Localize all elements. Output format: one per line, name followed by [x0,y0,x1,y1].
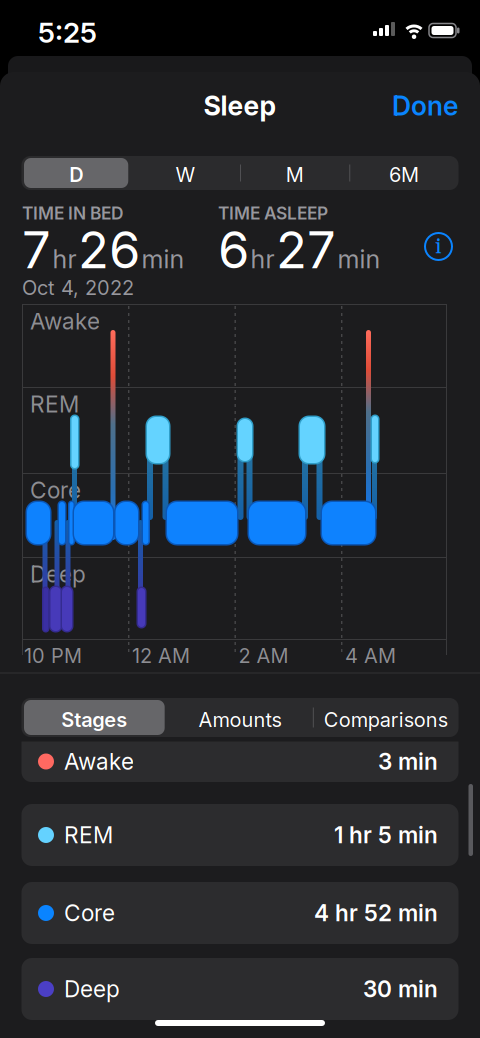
button[interactable]: Comparisons [313,708,458,732]
staticText: hr [250,244,274,274]
staticText: 30 min [363,976,438,1002]
staticText: Comparisons [324,708,448,732]
staticText: 4 hr 52 min [314,900,438,926]
staticText: Deep [64,976,120,1002]
staticText: 26 [78,220,140,280]
button[interactable]: Amounts [167,708,313,732]
button[interactable]: M [240,163,349,187]
staticText: 6M [389,163,419,187]
staticText: i [435,232,442,261]
button[interactable]: About Sleep Stages [425,233,452,260]
staticText: Core [30,477,81,504]
staticText: 1 hr 5 min [334,822,438,848]
staticText: 7 [22,220,51,280]
staticText: TIME ASLEEP [218,203,328,223]
staticText: Oct 4, 2022 [22,276,134,300]
staticText: W [175,163,195,187]
staticText: min [141,244,184,274]
staticText: Awake [30,308,100,335]
staticText: REM [30,391,79,418]
staticText: 12 AM [132,644,190,668]
staticText: 2 AM [238,644,288,668]
staticText: Deep [30,561,86,588]
button[interactable]: 6M [349,163,458,187]
staticText: M [286,163,304,187]
staticText: Awake [64,748,134,775]
staticText: TIME IN BED [22,203,124,223]
button[interactable]: Done [380,90,458,121]
staticText: Stages [61,708,127,732]
staticText: 4 AM [345,644,396,668]
staticText: 6 [218,220,249,280]
button[interactable]: D [21,163,131,187]
staticText: min [337,244,380,274]
staticText: D [69,163,83,187]
staticText: 5:25 [38,16,97,49]
staticText: Done [392,90,458,121]
staticText: hr [52,244,76,274]
button[interactable]: Stages [21,708,167,732]
button[interactable]: W [131,163,240,187]
staticText: 10 PM [24,644,82,668]
staticText: Core [64,900,115,926]
staticText: REM [64,822,113,848]
staticText: Amounts [198,708,281,732]
staticText: 3 min [378,748,438,775]
staticText: 27 [276,220,336,280]
staticText: Sleep [203,90,276,121]
